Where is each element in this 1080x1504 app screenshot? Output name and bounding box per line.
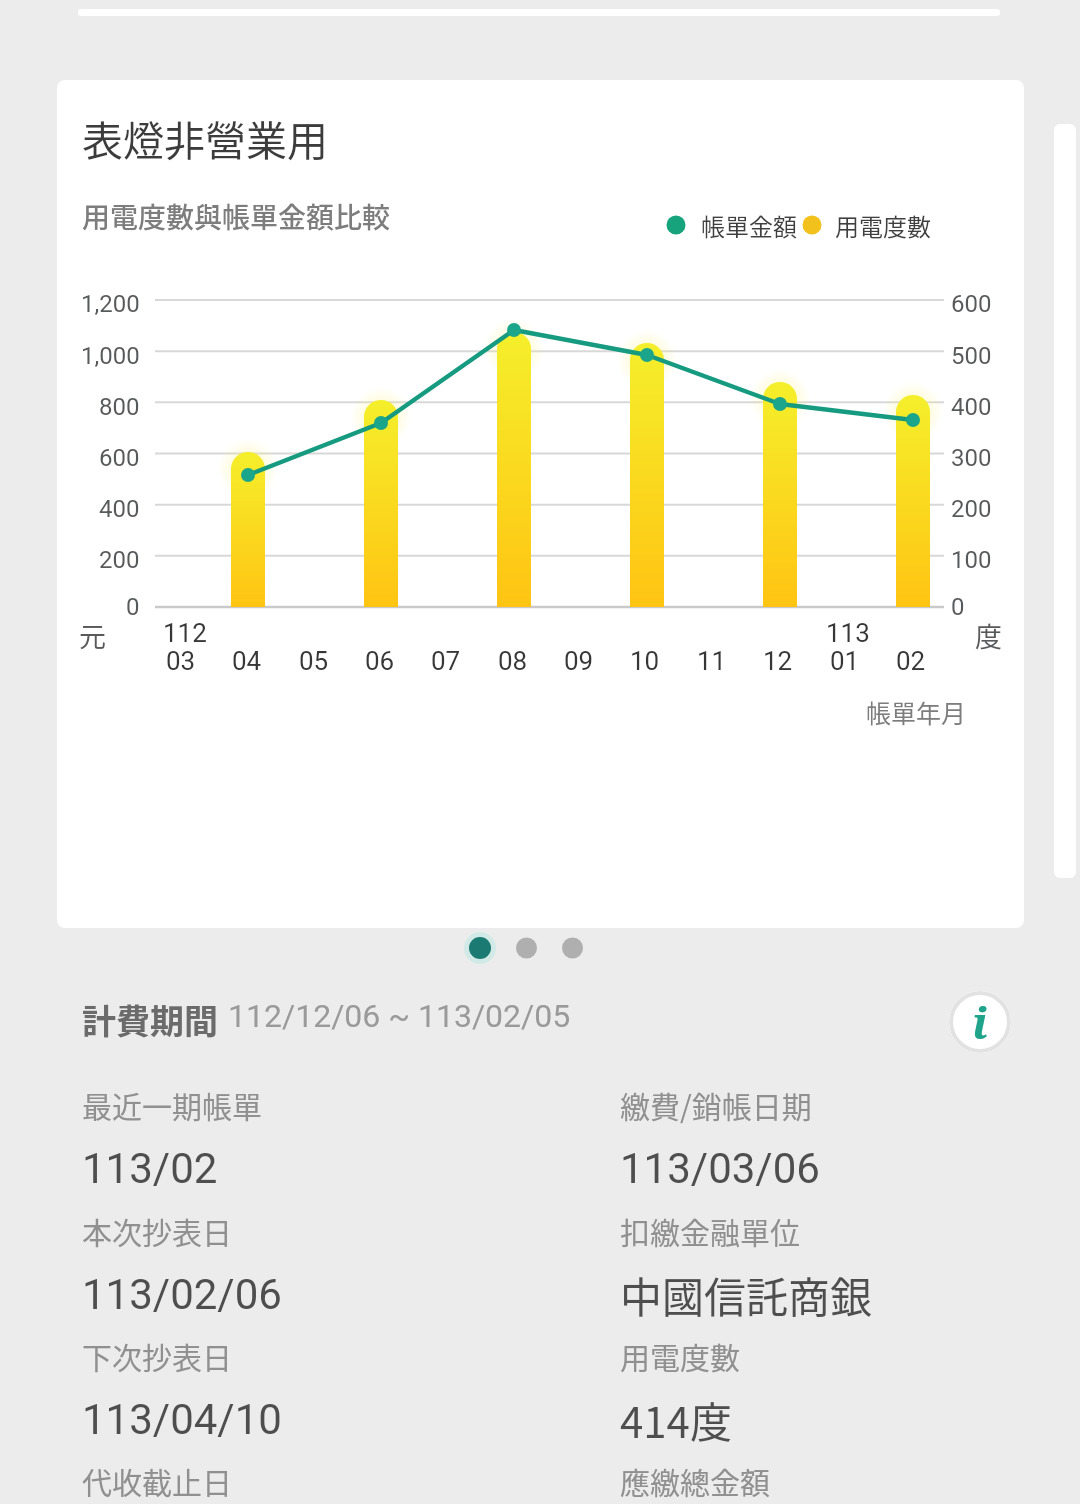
staticText: 元: [79, 616, 106, 655]
staticText: 01: [830, 646, 860, 676]
staticText: 1,000: [81, 342, 140, 370]
staticText: 度: [975, 616, 1002, 655]
button[interactable]: [57, 80, 1024, 928]
staticText: 400: [951, 393, 992, 421]
staticText: 500: [951, 342, 992, 370]
staticText: 03: [166, 646, 196, 676]
staticText: 800: [99, 393, 140, 421]
staticText: 0: [126, 593, 140, 621]
staticText: 112: [163, 618, 207, 648]
staticText: 帳單年月: [866, 694, 967, 730]
staticText: 05: [299, 646, 329, 676]
staticText: 414度: [620, 1389, 732, 1450]
staticText: 113: [826, 618, 870, 648]
staticText: 08: [498, 646, 528, 676]
staticText: 200: [951, 495, 992, 523]
staticText: 用電度數與帳單金額比較: [82, 196, 391, 237]
staticText: 04: [232, 646, 262, 676]
staticText: 07: [431, 646, 461, 676]
staticText: 帳單金額: [701, 208, 797, 243]
staticText: 06: [365, 646, 395, 676]
staticText: 中國信託商銀: [620, 1264, 873, 1325]
staticText: 本次抄表日: [82, 1209, 232, 1252]
staticText: 表燈非營業用: [82, 108, 328, 167]
staticText: 600: [99, 444, 140, 472]
staticText: 11: [697, 646, 727, 676]
staticText: i: [972, 992, 988, 1052]
staticText: 1,200: [81, 290, 140, 318]
staticText: 下次抄表日: [82, 1334, 232, 1377]
staticText: 113/03/06: [620, 1144, 820, 1193]
staticText: 400: [99, 495, 140, 523]
staticText: 最近一期帳單: [82, 1083, 262, 1126]
staticText: 用電度數: [620, 1334, 740, 1377]
staticText: 繳費/銷帳日期: [620, 1083, 812, 1126]
staticText: 12: [763, 646, 793, 676]
staticText: 113/02/06: [82, 1270, 282, 1319]
staticText: 02: [896, 646, 926, 676]
staticText: 100: [951, 546, 992, 574]
staticText: 09: [564, 646, 594, 676]
staticText: 計費期間: [82, 995, 218, 1044]
staticText: 113/04/10: [82, 1395, 282, 1444]
staticText: 應繳總金額: [620, 1459, 770, 1502]
staticText: 0: [951, 593, 965, 621]
staticText: 代收截止日: [82, 1459, 232, 1502]
staticText: 10: [630, 646, 660, 676]
staticText: 600: [951, 290, 992, 318]
staticText: 扣繳金融單位: [620, 1209, 800, 1252]
staticText: 112/12/06 ~ 113/02/05: [228, 997, 571, 1035]
staticText: 200: [99, 546, 140, 574]
staticText: 113/02: [82, 1144, 218, 1193]
staticText: 300: [951, 444, 992, 472]
staticText: 用電度數: [835, 208, 931, 243]
button[interactable]: i: [949, 991, 1011, 1053]
